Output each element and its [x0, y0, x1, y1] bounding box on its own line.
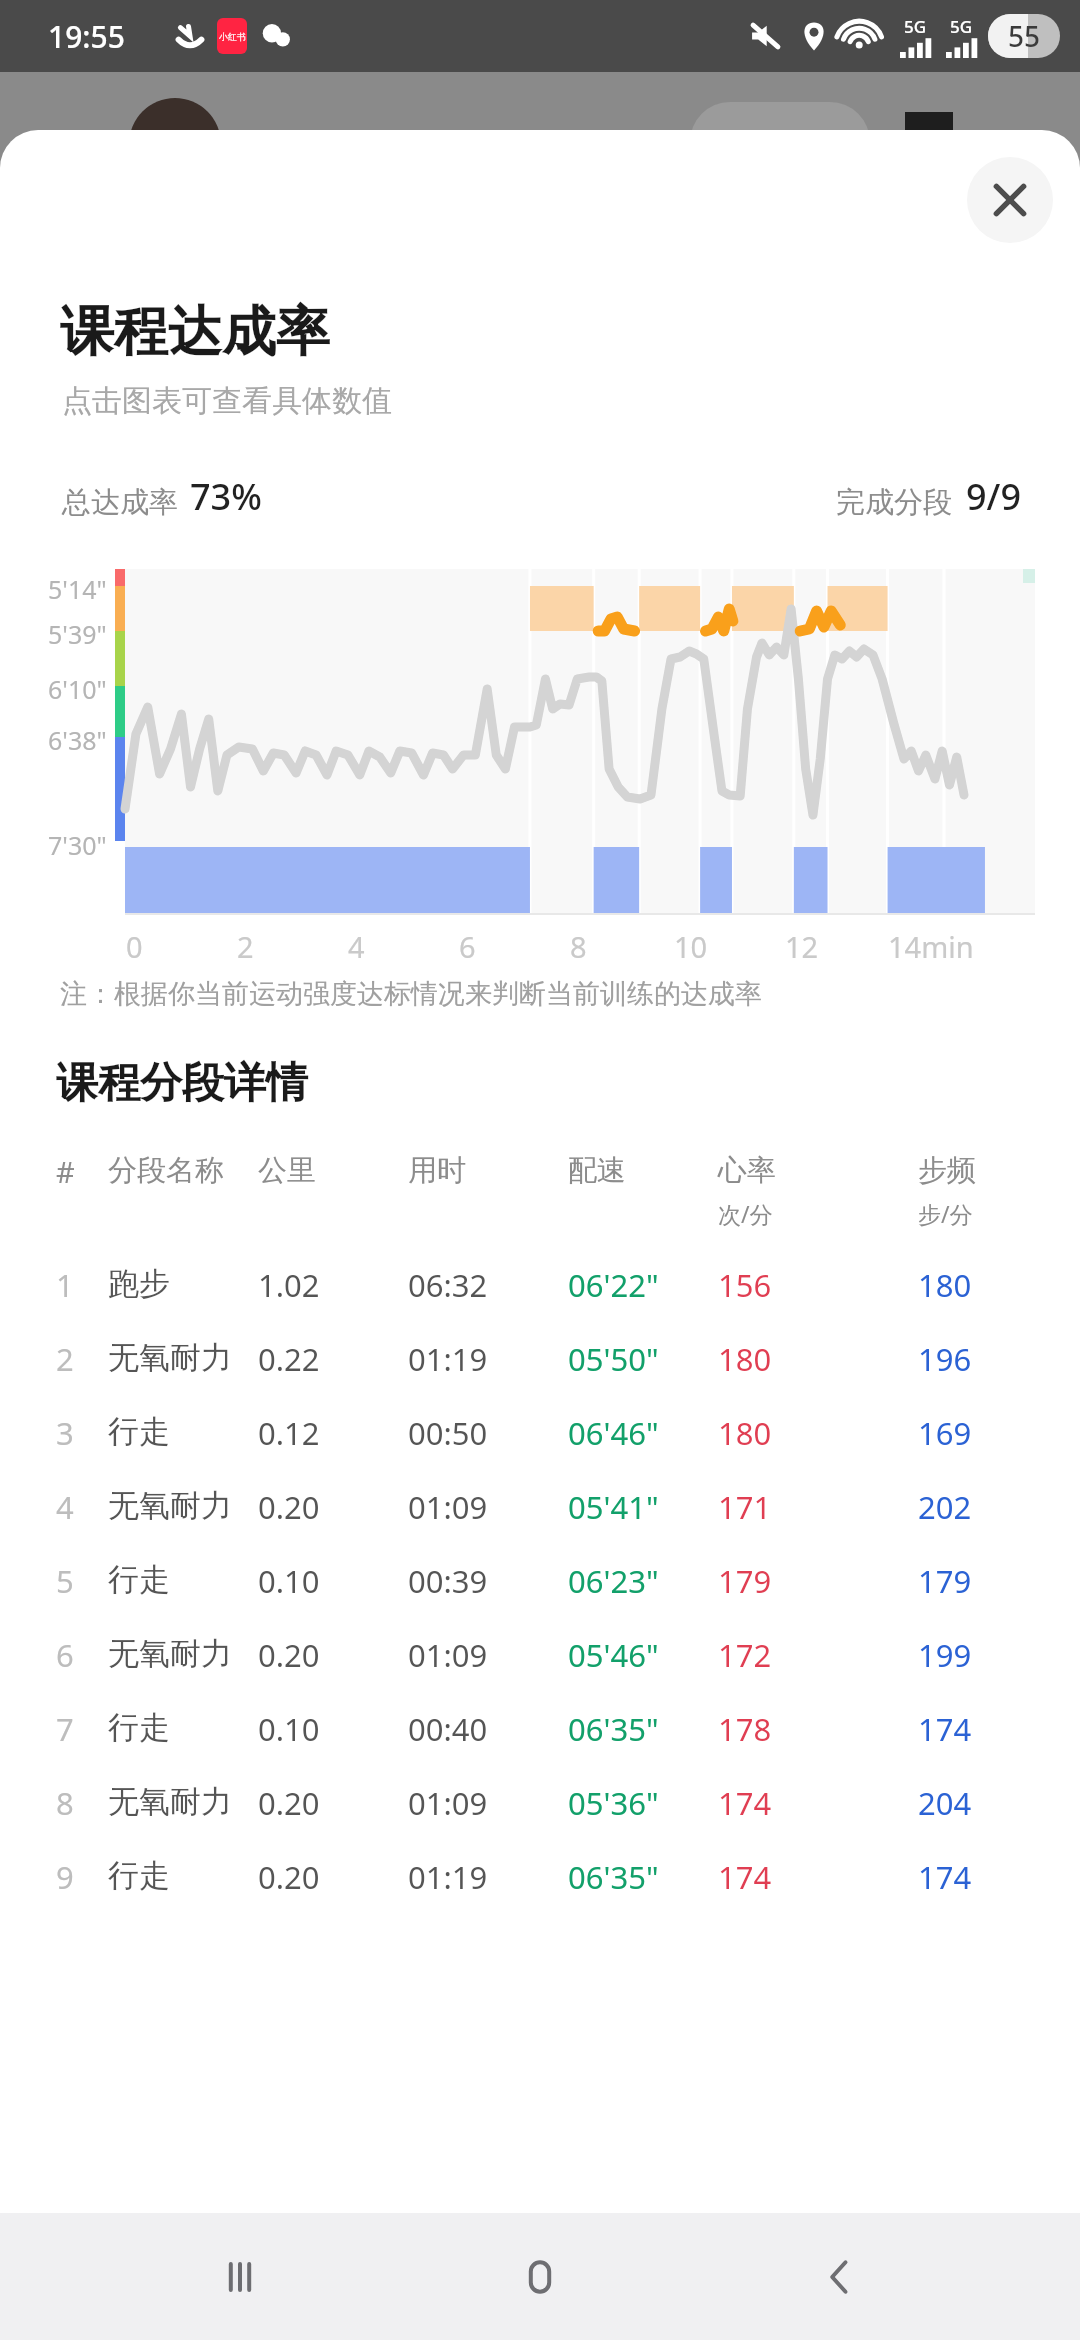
staticText: 01:09	[408, 1486, 488, 1528]
button[interactable]: Back	[780, 2217, 900, 2337]
button[interactable]: 3	[0, 1396, 1080, 1470]
staticText: 心率	[718, 1152, 776, 1189]
button[interactable]: Close	[967, 157, 1053, 243]
staticText: #	[56, 1152, 75, 1191]
staticText: 55	[1008, 17, 1041, 55]
staticText: 0.10	[258, 1560, 320, 1602]
button[interactable]: 8	[0, 1766, 1080, 1840]
staticText: 00:39	[408, 1560, 488, 1602]
staticText: 171	[718, 1486, 772, 1528]
staticText: 配速	[568, 1152, 626, 1189]
staticText: 01:19	[408, 1856, 488, 1898]
staticText: 179	[718, 1560, 772, 1602]
staticText: 完成分段	[836, 484, 952, 521]
staticText: 次/分	[718, 1198, 773, 1229]
staticText: 6	[56, 1634, 74, 1676]
staticText: 172	[718, 1634, 772, 1676]
staticText: 行走	[108, 1560, 170, 1599]
staticText: 180	[718, 1338, 772, 1380]
staticText: 0.20	[258, 1856, 320, 1898]
staticText: 204	[918, 1782, 972, 1824]
staticText: 行走	[108, 1412, 170, 1451]
staticText: 5G	[950, 15, 973, 38]
staticText: 196	[918, 1338, 972, 1380]
staticText: 174	[918, 1708, 972, 1750]
staticText: 总达成率	[62, 484, 178, 521]
button[interactable]: 5	[0, 1544, 1080, 1618]
staticText: 180	[918, 1264, 972, 1306]
button[interactable]: 6	[0, 1618, 1080, 1692]
staticText: 180	[718, 1412, 772, 1454]
button[interactable]: 9	[0, 1840, 1080, 1914]
staticText: 05'50"	[568, 1338, 659, 1380]
staticText: 0.12	[258, 1412, 320, 1454]
staticText: 无氧耐力	[108, 1782, 232, 1821]
staticText: 点击图表可查看具体数值	[62, 382, 392, 420]
staticText: 156	[718, 1264, 772, 1306]
staticText: 4	[56, 1486, 74, 1528]
staticText: 课程分段详情	[56, 1057, 308, 1110]
staticText: 步/分	[918, 1198, 973, 1229]
staticText: 6'10"	[48, 672, 107, 706]
staticText: 19:55	[48, 16, 125, 57]
button[interactable]: 2	[0, 1322, 1080, 1396]
staticText: 06'46"	[568, 1412, 659, 1454]
staticText: 1.02	[258, 1264, 320, 1306]
staticText: 06'35"	[568, 1708, 659, 1750]
staticText: 无氧耐力	[108, 1486, 232, 1525]
staticText: 06:32	[408, 1264, 488, 1306]
staticText: 注：根据你当前运动强度达标情况来判断当前训练的达成率	[60, 977, 762, 1011]
staticText: 12	[785, 927, 819, 966]
staticText: 分段名称	[108, 1152, 224, 1189]
staticText: 179	[918, 1560, 972, 1602]
staticText: 9	[56, 1856, 74, 1898]
staticText: 0.20	[258, 1486, 320, 1528]
staticText: 2	[56, 1338, 74, 1380]
staticText: 9/9	[966, 472, 1022, 521]
staticText: 无氧耐力	[108, 1634, 232, 1673]
staticText: 用时	[408, 1152, 466, 1189]
staticText: 0	[126, 927, 143, 966]
staticText: 行走	[108, 1708, 170, 1747]
staticText: 2	[237, 927, 254, 966]
staticText: 0.20	[258, 1634, 320, 1676]
button[interactable]: Recents	[180, 2217, 300, 2337]
staticText: 178	[718, 1708, 772, 1750]
staticText: 步频	[918, 1152, 976, 1189]
staticText: 00:40	[408, 1708, 488, 1750]
staticText: 199	[918, 1634, 972, 1676]
staticText: 6	[459, 927, 476, 966]
button[interactable]: 4	[0, 1470, 1080, 1544]
staticText: 7	[56, 1708, 74, 1750]
staticText: 06'23"	[568, 1560, 659, 1602]
staticText: 01:19	[408, 1338, 488, 1380]
staticText: 174	[918, 1856, 972, 1898]
staticText: 1	[56, 1264, 74, 1306]
staticText: 7'30"	[48, 828, 107, 862]
staticText: 8	[56, 1782, 74, 1824]
staticText: 174	[718, 1782, 772, 1824]
staticText: 14min	[888, 927, 974, 966]
staticText: 01:09	[408, 1634, 488, 1676]
staticText: 174	[718, 1856, 772, 1898]
staticText: 跑步	[108, 1264, 170, 1303]
button[interactable]: 7	[0, 1692, 1080, 1766]
button[interactable]: 1	[0, 1248, 1080, 1322]
staticText: 00:50	[408, 1412, 488, 1454]
staticText: 4	[348, 927, 365, 966]
staticText: 10	[674, 927, 708, 966]
staticText: 05'36"	[568, 1782, 659, 1824]
staticText: 0.10	[258, 1708, 320, 1750]
staticText: 公里	[258, 1152, 316, 1189]
staticText: 5'39"	[48, 617, 107, 651]
staticText: 课程达成率	[60, 298, 330, 366]
staticText: 5G	[904, 15, 927, 38]
staticText: 169	[918, 1412, 972, 1454]
staticText: 5'14"	[48, 572, 107, 606]
staticText: 3	[56, 1412, 74, 1454]
staticText: 01:09	[408, 1782, 488, 1824]
staticText: 5	[56, 1560, 74, 1602]
button[interactable]: Home	[480, 2217, 600, 2337]
staticText: 小红书	[219, 31, 246, 42]
staticText: 0.22	[258, 1338, 320, 1380]
